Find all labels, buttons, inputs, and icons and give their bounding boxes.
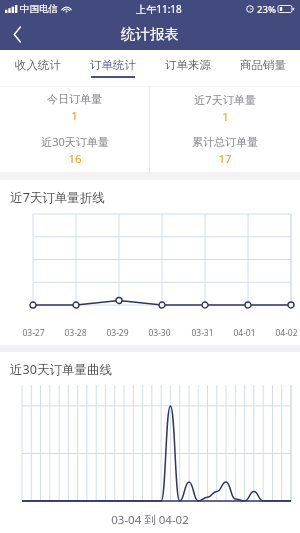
- staticText: 近30天订单量曲线: [10, 361, 112, 378]
- staticText: 03-31: [191, 327, 214, 339]
- staticText: 订单统计: [90, 58, 136, 72]
- button[interactable]: 商品销量: [225, 50, 300, 86]
- button[interactable]: 近7天订单量: [150, 87, 300, 129]
- staticText: 04-01: [233, 327, 256, 339]
- staticText: 03-04 到 04-02: [111, 512, 189, 528]
- staticText: 收入统计: [15, 58, 61, 72]
- staticText: 03-28: [64, 327, 87, 339]
- button[interactable]: 订单统计: [75, 50, 150, 86]
- staticText: 今日订单量: [47, 92, 102, 106]
- staticText: 04-02: [275, 327, 298, 339]
- staticText: 1: [222, 109, 229, 125]
- staticText: 近7天订单量: [194, 92, 256, 107]
- staticText: 17: [218, 151, 232, 167]
- staticText: 0: [24, 304, 30, 305]
- staticText: 中国电信: [20, 3, 58, 15]
- staticText: 累计总订单量: [192, 135, 258, 149]
- button[interactable]: 累计总订单量: [150, 129, 300, 172]
- staticText: 23%: [257, 3, 276, 16]
- staticText: 16: [68, 151, 82, 167]
- staticText: 近30天订单量: [41, 134, 109, 149]
- staticText: 03-29: [106, 327, 129, 339]
- staticText: 商品销量: [240, 58, 286, 72]
- staticText: 上午11:18: [136, 2, 182, 16]
- button[interactable]: 收入统计: [0, 50, 75, 86]
- staticText: 1: [71, 108, 78, 124]
- staticText: 统计报表: [121, 25, 179, 43]
- staticText: 订单来源: [165, 58, 211, 72]
- button[interactable]: 订单来源: [150, 50, 225, 86]
- button[interactable]: 今日订单量: [0, 87, 149, 129]
- staticText: 近7天订单量折线: [10, 189, 105, 206]
- button[interactable]: Back: [0, 18, 34, 50]
- button[interactable]: 近30天订单量: [0, 129, 149, 172]
- staticText: 03-27: [22, 327, 45, 339]
- staticText: 03-30: [148, 327, 171, 339]
